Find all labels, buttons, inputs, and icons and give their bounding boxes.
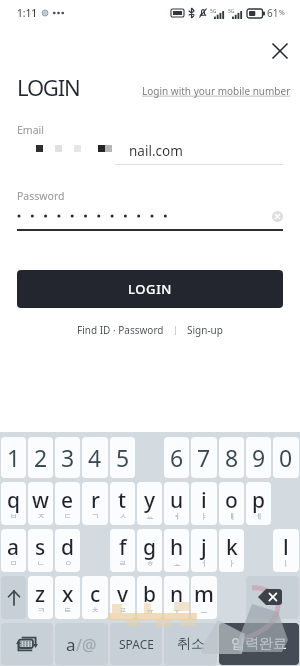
staticText: 5G (228, 8, 235, 15)
button[interactable]: o (219, 482, 244, 525)
staticText: % (279, 8, 285, 18)
button[interactable]: m (191, 576, 217, 619)
button[interactable]: 9 (246, 437, 271, 478)
staticText: ㅁ (10, 558, 18, 568)
button[interactable]: 2 (28, 437, 53, 478)
staticText: ㅌ (64, 605, 72, 615)
staticText: ㅅ (119, 511, 127, 521)
button[interactable]: Sign-up (187, 323, 223, 337)
button[interactable]: w (28, 482, 53, 525)
staticText: a (66, 633, 76, 656)
button[interactable]: j (191, 529, 217, 572)
button[interactable]: d (55, 529, 80, 572)
button[interactable]: q (1, 482, 26, 525)
staticText: ㅂ (10, 511, 18, 521)
staticText: ㅓ (200, 558, 208, 568)
staticText: u (170, 486, 184, 515)
staticText: SPACE (119, 636, 154, 652)
button[interactable]: 8 (219, 437, 244, 478)
button[interactable]: SPACE (110, 623, 162, 665)
staticText: / (76, 634, 82, 656)
staticText: ㅍ (119, 605, 127, 615)
button[interactable]: a (55, 623, 108, 665)
button[interactable]: Shift (1, 576, 26, 619)
staticText: 9 (252, 442, 266, 473)
button[interactable]: 취소 (164, 623, 217, 665)
button[interactable]: s (28, 529, 53, 572)
button[interactable]: Switch keyboard (1, 623, 53, 665)
button[interactable]: Close (266, 37, 293, 64)
button[interactable]: n (164, 576, 189, 619)
staticText: b (143, 580, 157, 609)
staticText: Sign-up (187, 323, 223, 337)
button[interactable]: y (137, 482, 162, 525)
staticText: 입력완료 (231, 635, 287, 653)
staticText: d (61, 533, 75, 562)
button[interactable]: g (137, 529, 162, 572)
staticText: LOGIN (17, 72, 80, 102)
button[interactable]: 6 (164, 437, 189, 478)
button[interactable]: e (55, 482, 80, 525)
staticText: 5G (210, 8, 217, 15)
button[interactable]: Find ID · Password (77, 323, 164, 337)
staticText: k (226, 533, 238, 562)
staticText: n (170, 580, 184, 609)
staticText: Password (17, 189, 65, 203)
button[interactable]: 1 (1, 437, 26, 478)
button[interactable]: c (82, 576, 108, 619)
button[interactable]: Backspace (246, 576, 299, 619)
staticText: ㅡ (200, 605, 208, 615)
button[interactable]: 입력완료 (219, 623, 299, 665)
staticText: nail.com (129, 142, 183, 160)
button[interactable]: r (82, 482, 108, 525)
staticText: ㄱ (91, 511, 99, 521)
staticText: t (118, 486, 127, 515)
button[interactable]: h (164, 529, 189, 572)
staticText: ㅔ (255, 511, 263, 521)
button[interactable]: p (246, 482, 271, 525)
staticText: ㅊ (91, 605, 99, 615)
button[interactable]: t (110, 482, 135, 525)
staticText: o (225, 486, 238, 515)
staticText: 0 (279, 442, 293, 473)
button[interactable]: v (110, 576, 135, 619)
staticText: LOGIN (128, 280, 173, 298)
staticText: f (119, 533, 127, 562)
button[interactable]: a (1, 529, 26, 572)
button[interactable]: LOGIN (17, 270, 283, 308)
button[interactable]: 5 (110, 437, 135, 478)
staticText: p (252, 486, 266, 515)
staticText: j (201, 533, 207, 562)
button[interactable]: Clear password (272, 211, 283, 222)
staticText: c (90, 580, 101, 609)
staticText: ㅐ (228, 511, 236, 521)
button[interactable]: f (110, 529, 135, 572)
staticText: v (117, 580, 129, 609)
staticText: 7 (197, 442, 211, 473)
button[interactable]: x (55, 576, 80, 619)
staticText: a (7, 533, 20, 562)
staticText: m (194, 580, 214, 609)
staticText: Login with your mobile number (142, 84, 291, 98)
staticText: @ (82, 634, 97, 656)
button[interactable]: 0 (273, 437, 299, 478)
staticText: 1 (7, 442, 21, 473)
button[interactable]: b (137, 576, 162, 619)
button[interactable]: 4 (82, 437, 108, 478)
button[interactable]: l (273, 529, 299, 572)
staticText: Email (17, 123, 44, 137)
button[interactable]: Login with your mobile number (142, 84, 291, 98)
button[interactable]: 3 (55, 437, 80, 478)
staticText: l (283, 533, 289, 562)
button[interactable]: i (191, 482, 217, 525)
button[interactable]: z (28, 576, 53, 619)
staticText: ㅎ (146, 558, 154, 568)
staticText: 5 (116, 442, 130, 473)
staticText: 취소 (177, 635, 205, 653)
staticText: ㅑ (200, 511, 208, 521)
button[interactable]: 7 (191, 437, 217, 478)
button[interactable]: u (164, 482, 189, 525)
staticText: 2 (34, 442, 48, 473)
staticText: w (32, 486, 49, 515)
button[interactable]: k (219, 529, 244, 572)
